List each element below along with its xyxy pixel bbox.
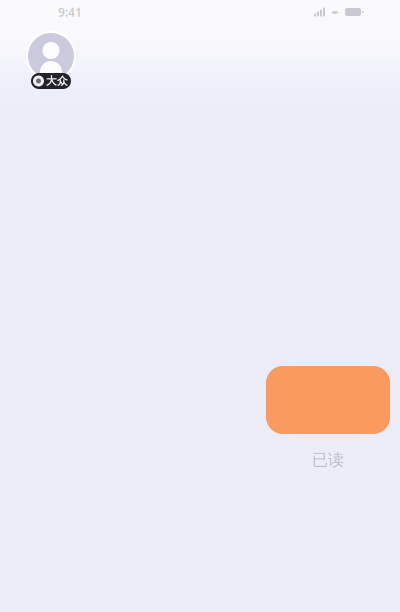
button[interactable]: Contact avatar xyxy=(26,31,76,81)
staticText: 9:41 xyxy=(58,4,82,20)
staticText: 大众 xyxy=(46,74,68,87)
staticText: 已读 xyxy=(312,450,344,470)
button[interactable]: 大众 xyxy=(31,73,71,89)
